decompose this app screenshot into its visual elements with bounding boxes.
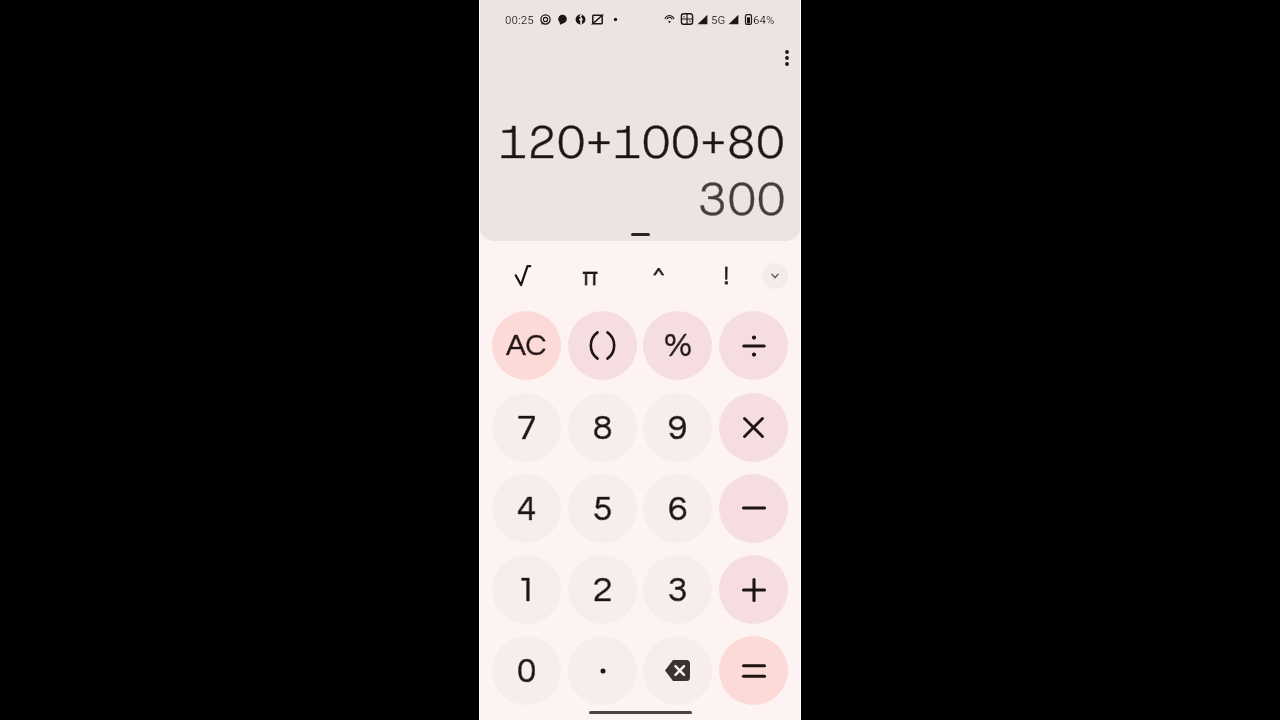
staticText: ! [723, 260, 730, 292]
staticText: 64% [753, 13, 775, 26]
staticText: 9 [668, 410, 688, 446]
staticText: 5 [593, 491, 613, 527]
staticText: 0 [517, 653, 537, 689]
button[interactable]: 8 [568, 393, 637, 462]
button[interactable]: 0 [492, 636, 561, 705]
button[interactable]: 4 [492, 474, 561, 543]
staticText: 9 [668, 410, 688, 446]
staticText: 300 [698, 169, 786, 229]
staticText: π [582, 259, 599, 294]
button[interactable]: Minus [719, 474, 788, 543]
button[interactable]: 1 [492, 555, 561, 624]
button[interactable]: Parentheses [568, 311, 637, 380]
staticText: 3 [668, 572, 688, 608]
staticText: 2 [593, 572, 613, 608]
button[interactable]: Backspace [643, 636, 712, 705]
staticText: AC [506, 330, 547, 361]
staticText: 6 [668, 491, 688, 527]
button[interactable]: ^ [635, 257, 683, 299]
staticText: 3 [668, 572, 688, 608]
staticText: 0 [517, 653, 537, 689]
button[interactable]: AC [492, 311, 561, 380]
staticText: π [582, 259, 599, 294]
staticText: ^ [651, 261, 667, 296]
staticText: 1 [517, 572, 537, 608]
staticText: 8 [593, 410, 613, 446]
staticText: 300 [698, 169, 786, 229]
button[interactable]: 5 [568, 474, 637, 543]
staticText: 7 [517, 410, 537, 446]
staticText: AC [506, 330, 547, 361]
button[interactable]: 9 [643, 393, 712, 462]
staticText: 120+100+80 [498, 112, 786, 172]
staticText: 2 [593, 572, 613, 608]
staticText: 5G [711, 13, 726, 26]
button[interactable]: Divide [719, 311, 788, 380]
button[interactable]: 2 [568, 555, 637, 624]
button[interactable]: ! [702, 255, 750, 297]
staticText: % [664, 329, 692, 363]
staticText: % [664, 329, 692, 363]
staticText: 8 [593, 410, 613, 446]
button[interactable]: Plus [719, 555, 788, 624]
button[interactable]: π [566, 255, 614, 297]
button[interactable]: % [643, 311, 712, 380]
staticText: 5 [593, 491, 613, 527]
staticText: ^ [651, 261, 667, 296]
staticText: 00:25 [505, 13, 534, 26]
staticText: 120+100+80 [498, 112, 786, 172]
staticText: ! [723, 260, 730, 292]
button[interactable]: Multiply [719, 393, 788, 462]
button[interactable]: 7 [492, 393, 561, 462]
staticText: 7 [517, 410, 537, 446]
staticText: 6 [668, 491, 688, 527]
button[interactable]: Square root [499, 254, 547, 296]
button[interactable]: 6 [643, 474, 712, 543]
button[interactable]: 3 [643, 555, 712, 624]
button[interactable]: Decimal point [568, 636, 637, 705]
staticText: 4 [517, 491, 537, 527]
button[interactable]: Expand keypad [762, 263, 788, 289]
staticText: 4 [517, 491, 537, 527]
button[interactable]: Equals [719, 636, 788, 705]
staticText: 1 [517, 572, 537, 608]
button[interactable]: More options [775, 46, 799, 70]
